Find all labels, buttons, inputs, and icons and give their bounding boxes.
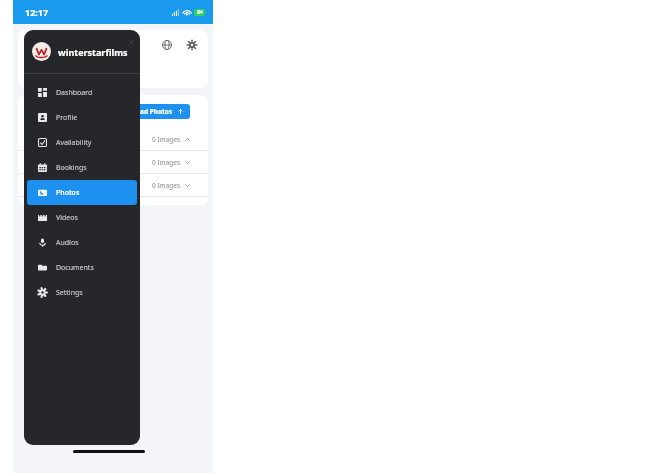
- button[interactable]: Availability: [27, 130, 137, 155]
- button[interactable]: Profile: [27, 105, 137, 130]
- button[interactable]: [24, 64, 186, 81]
- staticText: Audios: [56, 238, 79, 248]
- button[interactable]: Settings: [185, 38, 198, 51]
- button[interactable]: Close menu: [127, 38, 136, 47]
- staticText: Documents: [56, 263, 94, 273]
- button[interactable]: Dashboard: [27, 80, 137, 105]
- staticText: 0 Images: [152, 181, 181, 190]
- staticText: Photos: [56, 188, 80, 198]
- staticText: 0 Images: [152, 135, 181, 144]
- staticText: Bookings: [56, 163, 87, 173]
- button[interactable]: Bookings: [27, 155, 137, 180]
- button[interactable]: Documents: [27, 255, 137, 280]
- button[interactable]: Videos: [27, 205, 137, 230]
- staticText: 84: [197, 9, 203, 16]
- staticText: Dashboard: [56, 88, 93, 98]
- button[interactable]: Settings: [27, 280, 137, 305]
- staticText: Upload Photos: [125, 107, 173, 116]
- button[interactable]: 0 Images: [18, 128, 208, 150]
- staticText: 12:17: [25, 6, 49, 18]
- button[interactable]: 0 Images: [18, 174, 208, 196]
- button[interactable]: Audios: [27, 230, 137, 255]
- staticText: Settings: [56, 288, 83, 298]
- button[interactable]: Language: [160, 38, 173, 51]
- button[interactable]: Photos: [27, 180, 137, 205]
- staticText: Profile: [56, 113, 78, 123]
- staticText: Videos: [56, 213, 78, 223]
- button[interactable]: Upload Photos: [118, 104, 190, 119]
- staticText: Availability: [56, 138, 92, 148]
- staticText: 0 Images: [152, 158, 181, 167]
- button[interactable]: 0 Images: [18, 151, 208, 173]
- staticText: winterstarfilms: [58, 46, 128, 58]
